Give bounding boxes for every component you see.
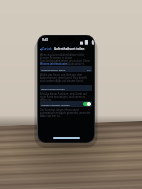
staticText: Letzten Standort senden [41,103,70,106]
staticText: Aufenthaltsort teilen [41,68,66,71]
staticText: Wenn du deinen Aufenthaltsort teilst, kö… [40,53,92,65]
button[interactable]: Zurück [40,47,52,51]
staticText: Aufenthaltsort teilen [54,47,85,51]
staticText: Ein [87,68,91,71]
button[interactable]: Letzten Standort senden [40,101,92,107]
button[interactable]: Aufenthaltsort teilen [40,66,92,72]
staticText: Mein iPhone suchen [41,87,65,90]
button[interactable]: Letzten Standort senden umschalten [83,102,91,106]
staticText: Wähle das Gerät, von dem aus dein Aufent… [40,73,92,82]
button[interactable]: Weitere Informationen … [40,62,70,65]
staticText: Zurück [42,47,52,51]
staticText: Erlaube dieser Funktion, dein Gerät auf … [40,92,92,101]
staticText: Der Standort dieses iPhone wird automati… [40,108,92,117]
button[interactable]: Mein iPhone suchen [40,85,92,91]
staticText: 9:41 [42,38,49,42]
